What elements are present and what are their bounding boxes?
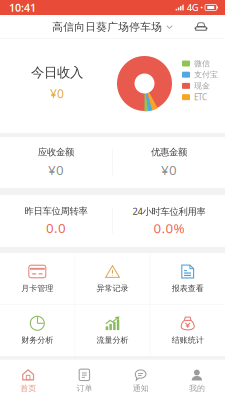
button[interactable]: 我的	[169, 363, 225, 396]
staticText: 财务分析	[21, 335, 53, 345]
staticText: ¥0	[50, 86, 64, 102]
staticText: 流量分析	[96, 335, 128, 345]
staticText: 订单	[76, 383, 92, 393]
staticText: 10:41	[9, 0, 36, 15]
staticText: 首页	[20, 383, 36, 393]
staticText: 0.0%	[153, 219, 184, 237]
staticText: 微信	[194, 59, 210, 68]
staticText: 应收金额	[38, 146, 74, 158]
staticText: 4G	[187, 1, 199, 14]
staticText: ¥0	[161, 161, 177, 179]
staticText: 昨日车位周转率	[25, 205, 88, 217]
button[interactable]: 流量分析	[75, 305, 150, 356]
staticText: 优惠金额	[151, 146, 187, 158]
staticText: 现金	[194, 81, 210, 91]
button[interactable]: 月卡管理	[0, 253, 75, 304]
button[interactable]: 财务分析	[0, 305, 75, 356]
staticText: 异常记录	[96, 283, 128, 293]
staticText: 0.0	[46, 219, 66, 237]
button[interactable]: 报表查看	[150, 253, 225, 304]
button[interactable]: 首页	[0, 363, 56, 396]
button[interactable]: 订单	[56, 363, 112, 396]
staticText: 我的	[189, 383, 205, 393]
staticText: 月卡管理	[21, 283, 53, 293]
staticText: 支付宝	[194, 70, 218, 80]
staticText: 高信向日葵广场停车场	[52, 20, 162, 33]
staticText: 今日收入	[31, 64, 83, 81]
button[interactable]: 异常记录	[75, 253, 150, 304]
staticText: 24小时车位利用率	[132, 205, 205, 217]
button[interactable]: 高信向日葵广场停车场	[46, 15, 179, 39]
staticText: 报表查看	[172, 283, 204, 293]
staticText: 结账统计	[172, 335, 204, 345]
staticText: ¥0	[48, 161, 64, 179]
staticText: ETC	[194, 92, 207, 102]
staticText: 通知	[133, 383, 149, 393]
button[interactable]: 切换车场	[188, 15, 214, 39]
button[interactable]: 结账统计	[150, 305, 225, 356]
button[interactable]: 通知	[112, 363, 169, 396]
